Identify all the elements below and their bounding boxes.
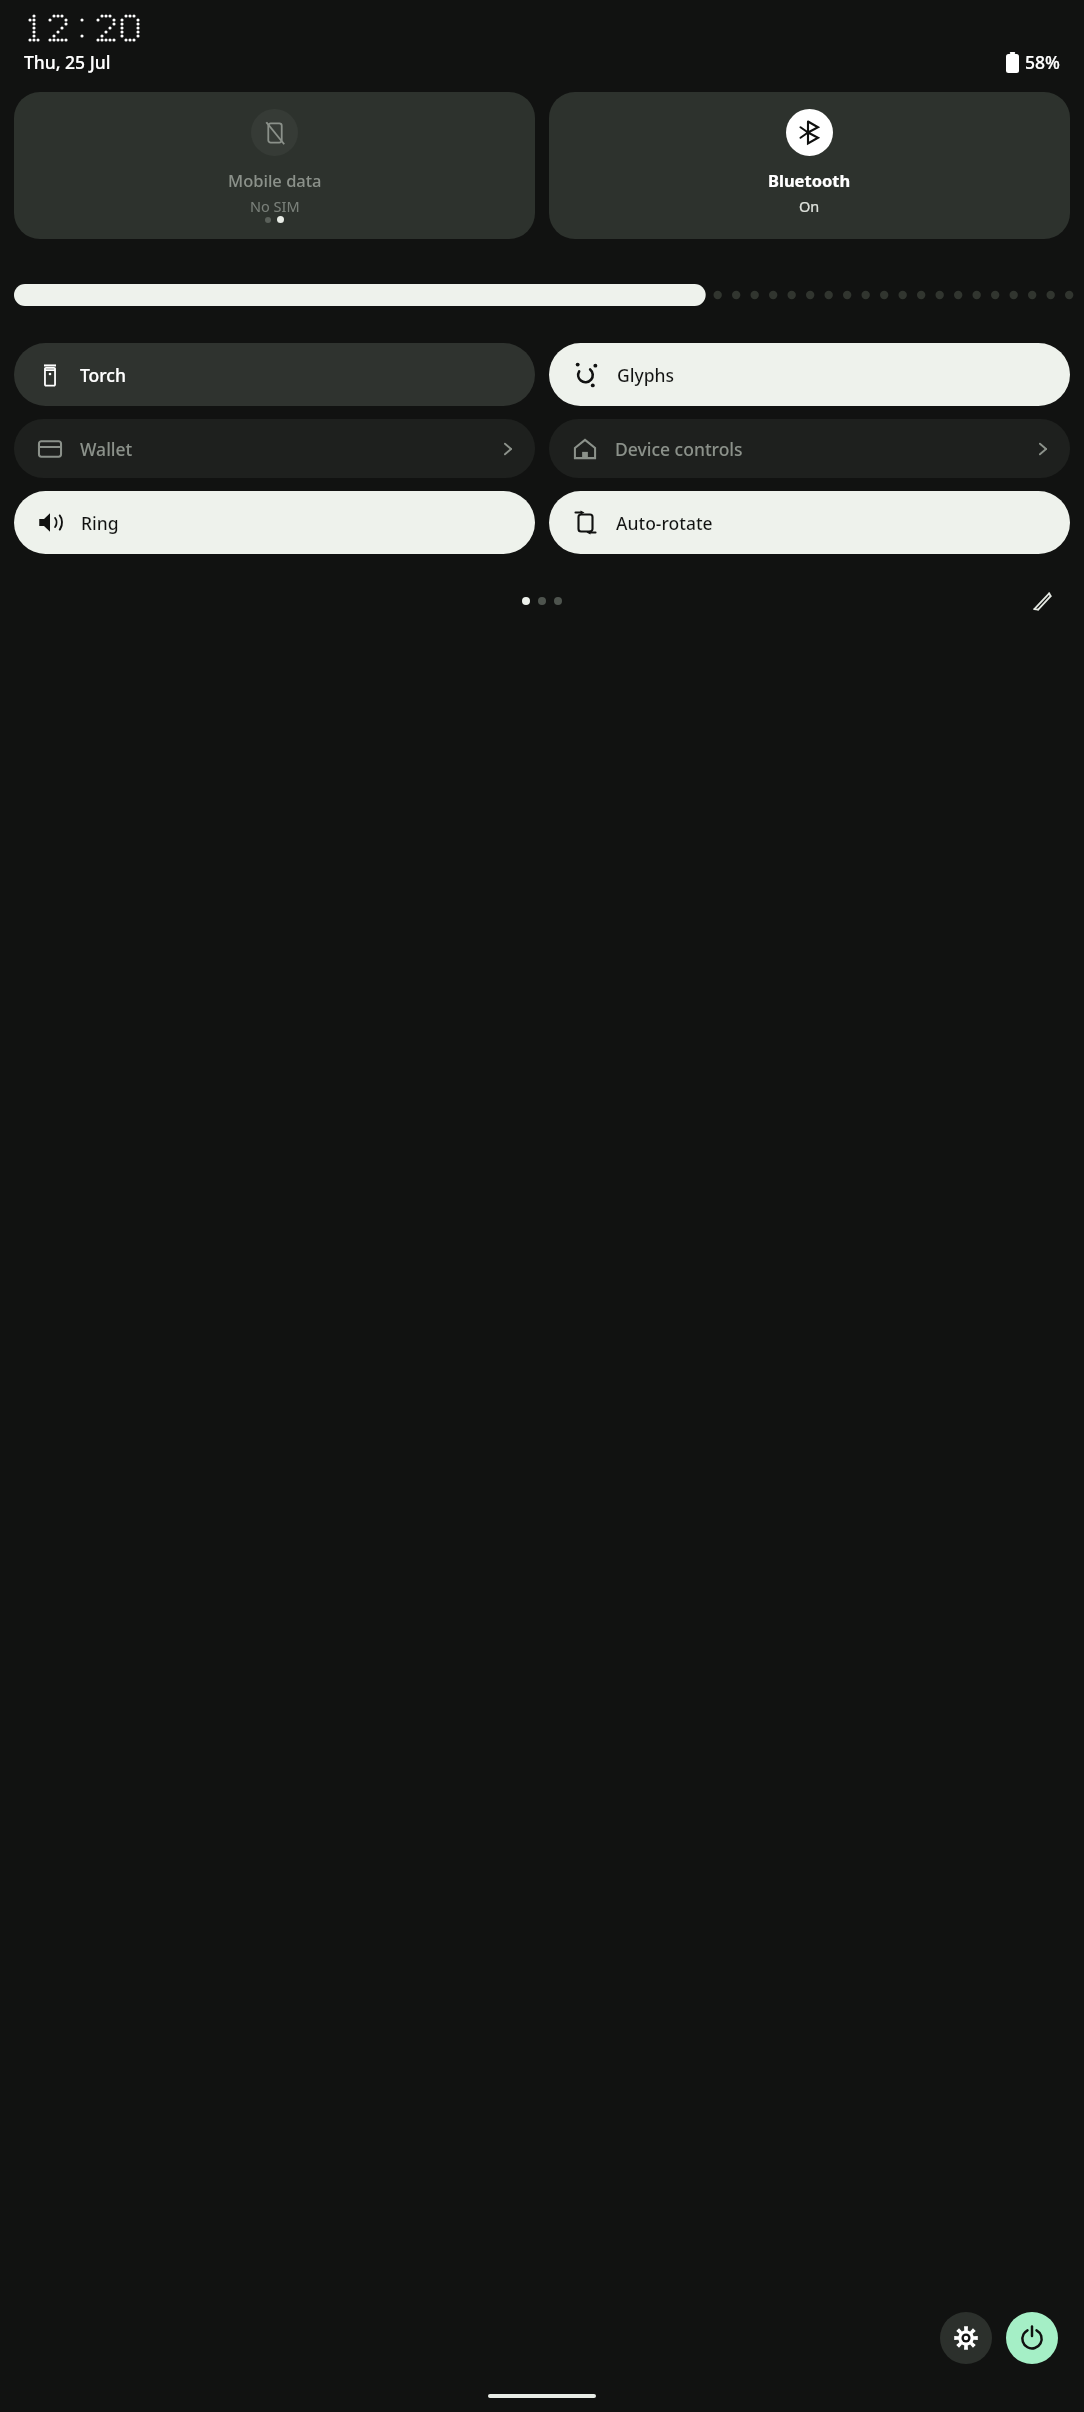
button[interactable]: Bluetooth bbox=[549, 92, 1070, 239]
button[interactable]: Device controls bbox=[549, 419, 1070, 478]
staticText: Device controls bbox=[615, 437, 743, 461]
staticText: Glyphs bbox=[617, 363, 675, 387]
button[interactable]: Glyphs bbox=[549, 343, 1070, 406]
button[interactable]: Mobile data bbox=[14, 92, 535, 239]
staticText: Bluetooth bbox=[768, 169, 851, 191]
staticText: On bbox=[799, 196, 820, 216]
staticText: 58% bbox=[1025, 50, 1060, 74]
staticText: Wallet bbox=[80, 437, 133, 461]
staticText: Torch bbox=[80, 363, 126, 387]
button[interactable]: Ring bbox=[14, 491, 535, 554]
staticText: Auto-rotate bbox=[616, 511, 713, 535]
staticText: Thu, 25 Jul bbox=[24, 50, 111, 74]
button[interactable]: Power bbox=[1006, 2312, 1058, 2364]
button[interactable]: Wallet bbox=[14, 419, 535, 478]
button[interactable]: Brightness bbox=[0, 280, 1084, 310]
staticText: No SIM bbox=[250, 196, 300, 216]
button[interactable]: Settings bbox=[940, 2312, 992, 2364]
button[interactable]: Auto-rotate bbox=[549, 491, 1070, 554]
button[interactable]: Torch bbox=[14, 343, 535, 406]
staticText: Mobile data bbox=[228, 169, 322, 191]
button[interactable]: Edit tiles bbox=[1022, 584, 1062, 618]
staticText: Ring bbox=[81, 511, 119, 535]
